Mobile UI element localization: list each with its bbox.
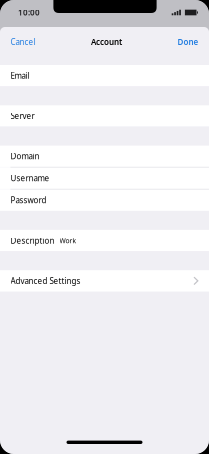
button[interactable]: Email (0, 65, 209, 86)
staticText: Description (10, 235, 54, 246)
staticText: Email (10, 70, 29, 81)
button[interactable]: Advanced Settings (0, 270, 209, 291)
staticText: Password (10, 195, 46, 205)
staticText: Cancel (10, 36, 35, 47)
button[interactable]: Username (0, 168, 209, 189)
staticText: Domain (10, 151, 39, 161)
staticText: Username (10, 173, 49, 183)
button[interactable]: Done (176, 27, 199, 57)
button[interactable]: Password (0, 190, 209, 211)
staticText: Account (91, 36, 122, 47)
button[interactable]: Domain (0, 146, 209, 167)
staticText: Work (59, 236, 76, 245)
staticText: Server (10, 111, 34, 121)
button[interactable]: Cancel (9, 27, 36, 57)
button[interactable]: Description (0, 230, 209, 251)
button[interactable]: Server (0, 105, 209, 127)
staticText: 10:00 (18, 7, 40, 18)
staticText: Done (177, 36, 198, 47)
staticText: Advanced Settings (10, 275, 80, 286)
